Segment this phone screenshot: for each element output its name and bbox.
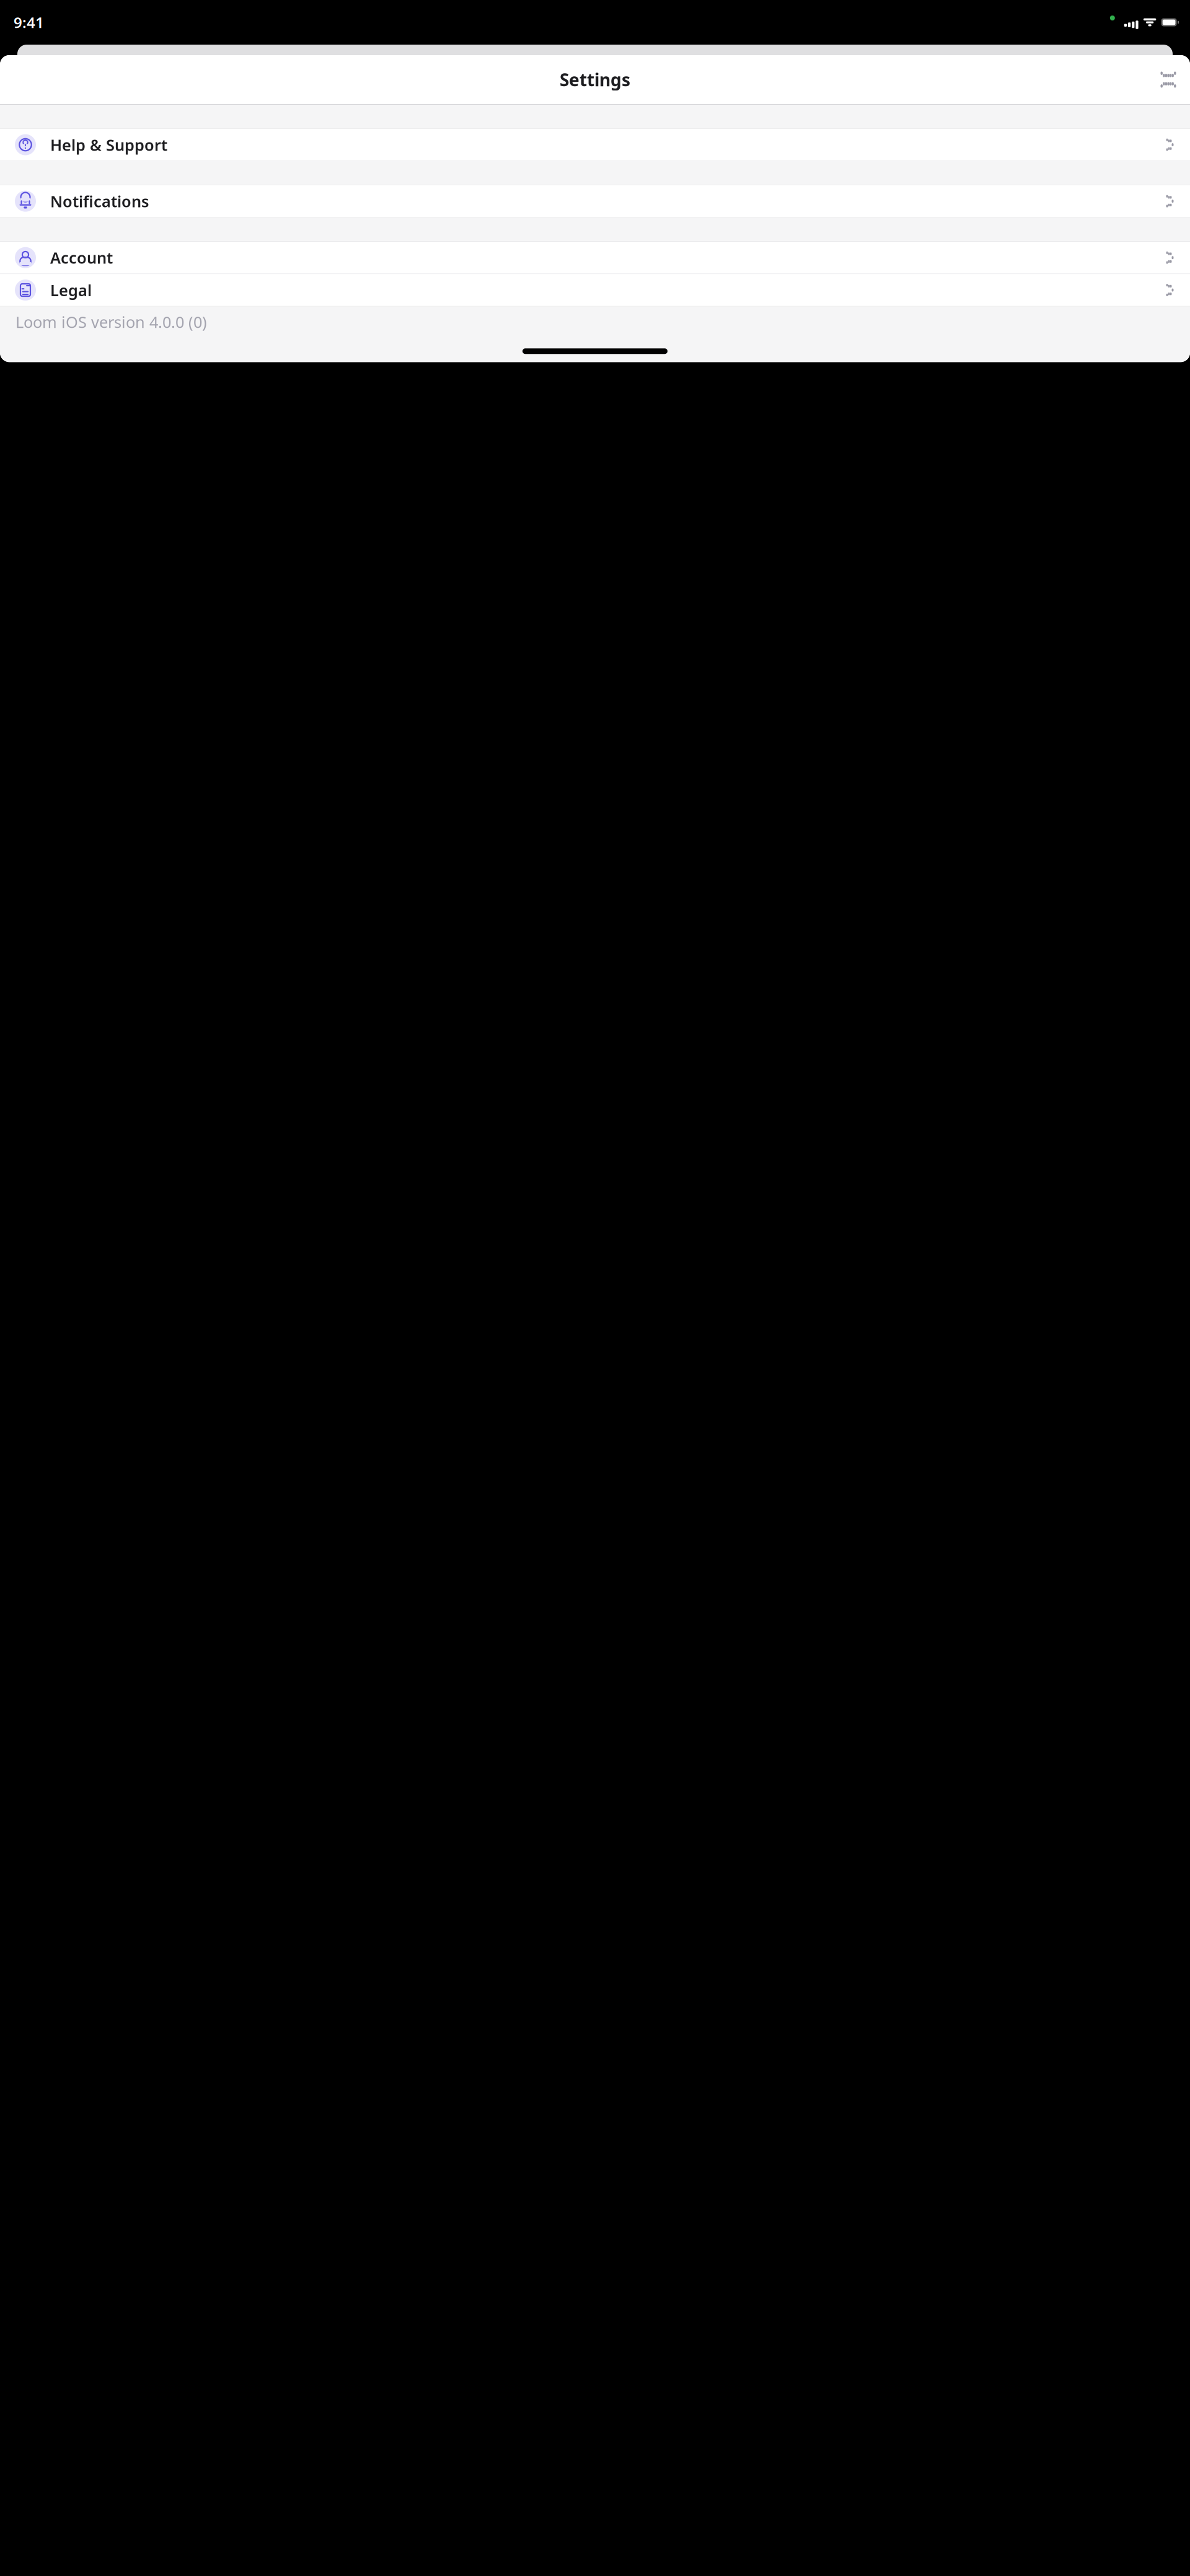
button[interactable]: Notifications	[0, 185, 1190, 217]
staticText: Help & Support	[50, 134, 167, 155]
button[interactable]: Close	[1154, 65, 1183, 94]
staticText: 9:41	[14, 12, 44, 32]
staticText: Notifications	[50, 191, 149, 212]
staticText: Loom iOS version 4.0.0 (0)	[15, 311, 207, 332]
button[interactable]: Account	[0, 242, 1190, 274]
staticText: Legal	[50, 280, 92, 300]
staticText: Account	[50, 247, 113, 268]
staticText: Settings	[560, 68, 630, 91]
button[interactable]: Help & Support	[0, 129, 1190, 161]
button[interactable]: Legal	[0, 274, 1190, 306]
